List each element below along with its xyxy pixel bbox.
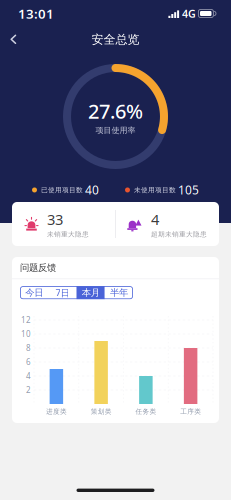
staticText: 27.6% (88, 98, 143, 124)
button[interactable]: 今日 (20, 286, 48, 299)
staticText: 12 (21, 315, 31, 325)
button[interactable]: 本月 (76, 286, 105, 299)
staticText: 4 (26, 371, 31, 381)
staticText: 4G (182, 6, 196, 21)
staticText: 33 (47, 210, 63, 229)
staticText: 未使用项目数 (134, 186, 176, 194)
staticText: 策划类 (91, 407, 112, 416)
staticText: 40 (85, 182, 99, 198)
staticText: 未销重大隐患 (47, 230, 89, 238)
staticText: 7日 (55, 286, 69, 299)
staticText: 4 (151, 210, 159, 229)
staticText: 安全总览 (91, 32, 139, 47)
staticText: 超期未销重大隐患 (151, 230, 207, 238)
staticText: 13:01 (18, 5, 54, 22)
staticText: 任务类 (135, 407, 156, 416)
staticText: 工序类 (180, 407, 201, 416)
staticText: 进度类 (46, 407, 67, 416)
staticText: 6 (26, 357, 31, 367)
button[interactable]: Back (2, 28, 25, 50)
staticText: 105 (178, 182, 199, 198)
staticText: 本月 (82, 287, 100, 298)
staticText: 半年 (110, 287, 128, 298)
button[interactable]: 半年 (105, 286, 133, 299)
staticText: 今日 (25, 287, 43, 298)
button[interactable]: 7日 (48, 286, 76, 299)
staticText: 8 (26, 343, 31, 353)
staticText: 2 (26, 385, 31, 395)
staticText: 问题反馈 (20, 262, 56, 273)
staticText: 已使用项目数 (41, 186, 83, 194)
staticText: 项目使用率 (95, 125, 135, 135)
staticText: 10 (21, 329, 31, 339)
